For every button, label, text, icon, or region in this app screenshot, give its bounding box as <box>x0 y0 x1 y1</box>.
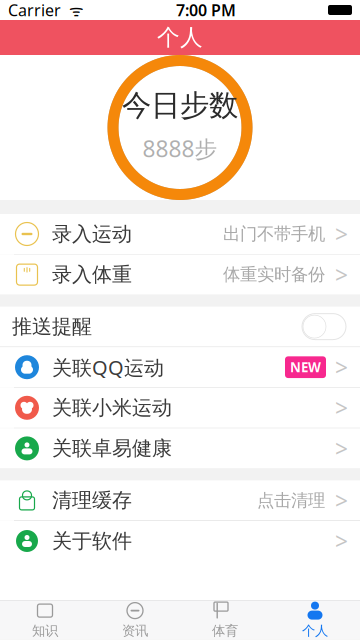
staticText: 个人 <box>157 24 203 51</box>
button[interactable]: 关于软件 <box>0 521 360 561</box>
button[interactable]: 资讯 <box>90 601 180 640</box>
staticText: > <box>335 352 348 382</box>
staticText: 关于软件 <box>52 529 132 553</box>
staticText: 点击清理 <box>257 490 325 511</box>
button[interactable]: 关联小米运动 <box>0 388 360 428</box>
staticText: NEW <box>290 358 321 376</box>
staticText: 录入体重 <box>52 262 132 287</box>
button[interactable]: 关联QQ运动 <box>0 347 360 387</box>
button[interactable]: 推送提醒 <box>0 307 360 347</box>
staticText: 知识 <box>32 623 58 639</box>
staticText: 关联卓易健康 <box>52 436 172 461</box>
staticText: > <box>335 433 348 463</box>
staticText: 体重实时备份 <box>223 264 325 285</box>
staticText: 今日步数 <box>122 87 238 123</box>
button[interactable]: 知识 <box>0 601 90 640</box>
staticText: > <box>335 393 348 423</box>
button[interactable]: 录入体重 <box>0 255 360 295</box>
staticText: > <box>335 526 348 556</box>
button[interactable]: 录入运动 <box>0 214 360 254</box>
staticText: 资讯 <box>122 623 148 639</box>
staticText: > <box>335 219 348 249</box>
staticText: 清理缓存 <box>52 488 132 513</box>
button[interactable]: 体育 <box>180 601 270 640</box>
staticText: 7:00 PM <box>176 0 236 21</box>
staticText: > <box>335 259 348 290</box>
staticText: 个人 <box>302 623 328 639</box>
staticText: Carrier ᯤ <box>8 0 84 21</box>
button[interactable]: 清理缓存 <box>0 480 360 520</box>
staticText: 录入运动 <box>52 222 132 246</box>
button[interactable]: 个人 <box>270 601 360 640</box>
button[interactable]: 关联卓易健康 <box>0 428 360 468</box>
staticText: 8888步 <box>142 133 217 164</box>
staticText: 关联QQ运动 <box>52 354 164 380</box>
staticText: 关联小米运动 <box>52 395 172 420</box>
staticText: > <box>335 485 348 515</box>
staticText: 出门不带手机 <box>223 223 325 245</box>
staticText: 推送提醒 <box>12 314 92 339</box>
staticText: 体育 <box>212 623 238 639</box>
